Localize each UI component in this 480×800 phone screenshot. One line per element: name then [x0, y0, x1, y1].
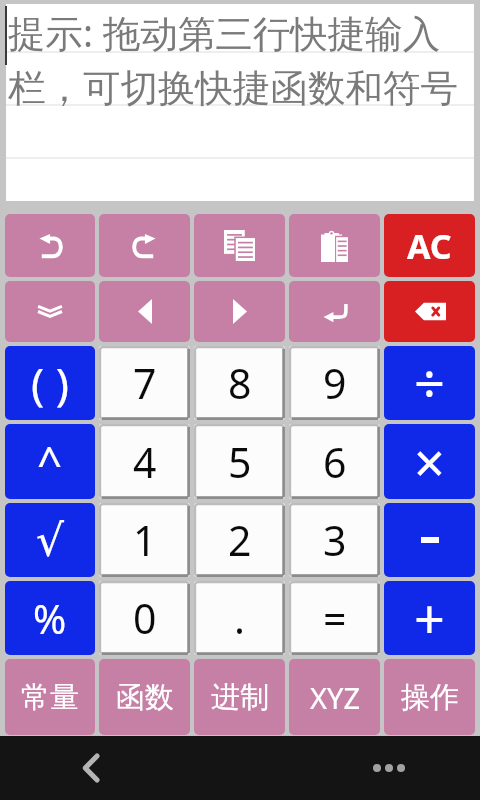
staticText: ^ — [37, 432, 63, 492]
staticText: ÷ — [414, 346, 445, 420]
staticText: 7 — [133, 355, 157, 411]
button[interactable]: 3 — [289, 503, 380, 577]
button[interactable]: 2 — [194, 503, 285, 577]
button[interactable]: Back — [61, 738, 121, 798]
button[interactable]: AC — [384, 214, 475, 277]
button[interactable]: % — [5, 581, 95, 655]
button[interactable]: Right — [194, 281, 285, 342]
staticText: 2 — [228, 512, 252, 568]
button[interactable]: 8 — [194, 346, 285, 420]
staticText: AC — [407, 223, 452, 269]
staticText: × — [414, 425, 445, 499]
staticText: = — [323, 590, 347, 646]
button[interactable]: Paste — [289, 214, 380, 277]
staticText: 4 — [133, 434, 157, 490]
button[interactable]: XYZ — [289, 659, 380, 735]
staticText: √ — [36, 515, 65, 566]
button[interactable]: √ — [5, 503, 95, 577]
staticText: XYZ — [310, 678, 360, 717]
button[interactable]: Backspace — [384, 281, 475, 342]
button[interactable]: ÷ — [384, 346, 475, 420]
button[interactable]: Redo — [99, 214, 190, 277]
staticText: 常量 — [21, 679, 79, 716]
button[interactable]: = — [289, 581, 380, 655]
staticText: . — [234, 590, 245, 646]
button[interactable]: + — [384, 581, 475, 655]
button[interactable]: 函数 — [99, 659, 190, 735]
button[interactable]: 进制 — [194, 659, 285, 735]
staticText: 8 — [228, 355, 252, 411]
button[interactable]: Enter — [289, 281, 380, 342]
staticText: 0 — [133, 590, 157, 646]
button[interactable]: ^ — [5, 424, 95, 499]
staticText: 操作 — [401, 679, 459, 716]
button[interactable]: 6 — [289, 424, 380, 499]
button[interactable]: 常量 — [5, 659, 95, 735]
button[interactable]: 4 — [99, 424, 190, 499]
button[interactable]: 5 — [194, 424, 285, 499]
staticText: 函数 — [116, 679, 174, 716]
staticText: 进制 — [211, 679, 269, 716]
button[interactable]: . — [194, 581, 285, 655]
button[interactable]: Collapse — [5, 281, 95, 342]
staticText: 5 — [228, 434, 252, 490]
button[interactable]: Left — [99, 281, 190, 342]
staticText: 1 — [133, 512, 157, 568]
staticText: 9 — [323, 355, 347, 411]
button[interactable]: × — [384, 424, 475, 499]
button[interactable]: 操作 — [384, 659, 475, 735]
staticText: 提示: 拖动第三行快捷输入 栏，可切换快捷函数和符号 — [8, 7, 458, 112]
button[interactable]: 9 — [289, 346, 380, 420]
button[interactable]: More options — [359, 738, 419, 798]
staticText: 6 — [323, 434, 347, 490]
button[interactable]: ( ) — [5, 346, 95, 420]
staticText: 3 — [323, 512, 347, 568]
button[interactable]: 0 — [99, 581, 190, 655]
button[interactable]: Copy — [194, 214, 285, 277]
staticText: + — [414, 581, 445, 655]
button[interactable]: 7 — [99, 346, 190, 420]
staticText: % — [33, 591, 67, 645]
button[interactable]: Undo — [5, 214, 95, 277]
button[interactable]: minus — [384, 503, 475, 577]
staticText: ( ) — [31, 353, 69, 413]
button[interactable]: 1 — [99, 503, 190, 577]
